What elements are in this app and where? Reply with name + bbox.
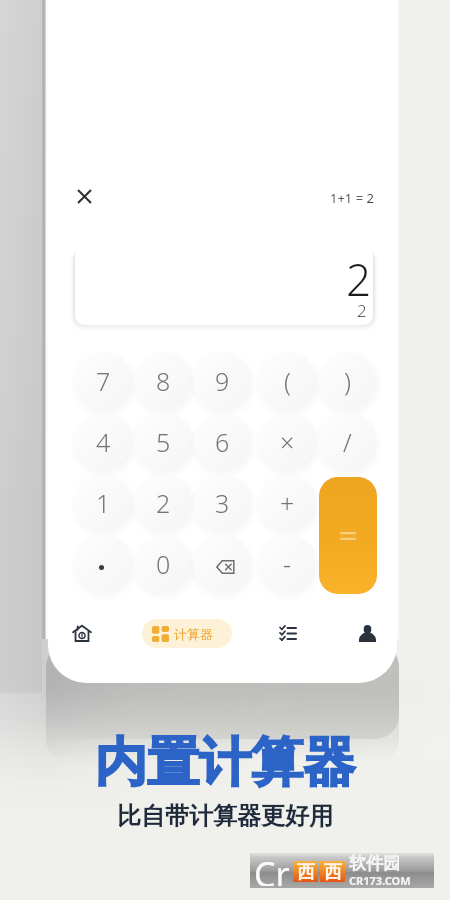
button[interactable]: 3 [193, 474, 251, 532]
staticText: 软件园 [349, 853, 400, 874]
button[interactable]: 4 [74, 413, 132, 471]
staticText: Cr [254, 851, 290, 886]
button[interactable]: Home [62, 613, 102, 653]
staticText: 0 [156, 547, 171, 581]
staticText: 2 [156, 486, 171, 520]
staticText: 5 [156, 425, 171, 459]
staticText: 1 [96, 486, 111, 520]
button[interactable]: Profile [347, 613, 387, 653]
button[interactable]: 0 [134, 535, 192, 593]
button[interactable]: 2 [134, 474, 192, 532]
button[interactable]: 5 [134, 413, 192, 471]
button[interactable]: + [258, 474, 316, 532]
staticText: 比自带计算器更好用 [117, 801, 333, 831]
button[interactable]: 7 [74, 352, 132, 410]
button[interactable]: ( [258, 352, 316, 410]
button[interactable]: Delete [193, 535, 251, 593]
staticText: × [280, 425, 295, 459]
staticText: 2 [357, 299, 367, 322]
button[interactable]: Close [73, 185, 95, 207]
button[interactable]: / [318, 413, 376, 471]
staticText: 2 [346, 249, 372, 309]
staticText: 4 [96, 425, 111, 459]
staticText: 西 [324, 861, 342, 882]
button[interactable]: × [258, 413, 316, 471]
staticText: 西 [297, 861, 315, 882]
button[interactable]: - [258, 535, 316, 593]
button[interactable]: Tasks [268, 613, 308, 653]
staticText: ) [344, 364, 351, 398]
staticText: 8 [156, 364, 171, 398]
staticText: 1+1 = 2 [330, 189, 374, 207]
staticText: 6 [215, 425, 230, 459]
staticText: 计算器 [174, 626, 213, 642]
button[interactable]: 9 [193, 352, 251, 410]
button[interactable]: 8 [134, 352, 192, 410]
staticText: + [280, 486, 295, 520]
staticText: 9 [215, 364, 230, 398]
staticText: ( [284, 364, 291, 398]
button[interactable]: 1 [74, 474, 132, 532]
button[interactable]: 6 [193, 413, 251, 471]
staticText: / [343, 425, 352, 459]
button[interactable]: ) [318, 352, 376, 410]
button[interactable] [74, 535, 132, 593]
staticText: 内置计算器 [95, 730, 355, 796]
staticText: - [283, 547, 292, 581]
button[interactable]: Equals [319, 477, 377, 594]
button[interactable]: 计算器 [142, 619, 232, 648]
staticText: CR173.COM [349, 873, 411, 887]
staticText: 7 [96, 364, 111, 398]
staticText: 3 [215, 486, 230, 520]
